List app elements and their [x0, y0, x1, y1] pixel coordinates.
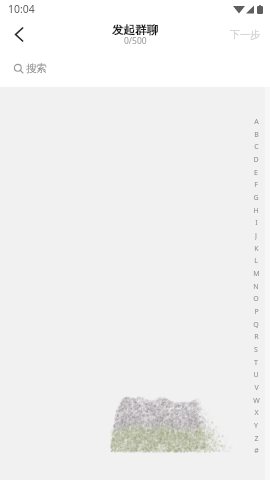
staticText: C: [254, 142, 259, 151]
staticText: N: [253, 282, 259, 291]
staticText: 下一步: [230, 28, 260, 41]
staticText: F: [254, 180, 258, 189]
button[interactable]: 搜索: [14, 62, 47, 75]
staticText: Z: [254, 434, 259, 443]
staticText: K: [254, 244, 259, 253]
staticText: X: [254, 408, 259, 417]
staticText: 搜索: [26, 62, 47, 75]
staticText: O: [253, 294, 259, 303]
staticText: D: [253, 155, 259, 164]
button[interactable]: A: [249, 0, 263, 480]
staticText: Y: [254, 421, 258, 430]
staticText: Q: [253, 320, 259, 329]
staticText: W: [253, 396, 260, 405]
staticText: 发起群聊: [112, 23, 158, 37]
staticText: R: [254, 332, 259, 341]
staticText: A: [254, 117, 259, 126]
staticText: 10:04: [8, 2, 35, 16]
staticText: P: [254, 307, 259, 316]
staticText: H: [253, 206, 259, 215]
staticText: J: [255, 231, 257, 240]
staticText: S: [254, 345, 258, 354]
staticText: #: [254, 446, 259, 455]
staticText: E: [254, 168, 258, 177]
staticText: U: [253, 370, 259, 379]
staticText: V: [254, 383, 259, 392]
button[interactable]: 下一步: [230, 28, 260, 41]
button[interactable]: Back: [3, 18, 35, 50]
staticText: G: [253, 193, 259, 202]
staticText: M: [253, 269, 260, 278]
staticText: L: [254, 256, 258, 265]
staticText: T: [254, 358, 258, 367]
staticText: 0/500: [124, 35, 147, 47]
staticText: B: [254, 130, 259, 139]
staticText: I: [255, 218, 258, 227]
